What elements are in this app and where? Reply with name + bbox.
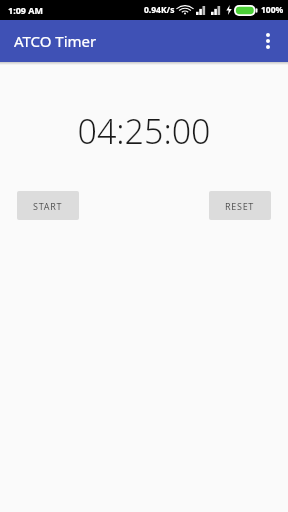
button[interactable]: RESET [209,191,271,220]
button[interactable]: More options [248,21,288,61]
button[interactable]: START [17,191,79,220]
staticText: 04:25:00 [0,108,288,154]
staticText: RESET [225,200,255,212]
staticText: ATCO Timer [14,31,97,51]
staticText: 100% [261,4,284,16]
staticText: 0.94K/s [144,4,175,16]
staticText: 1:09 AM [8,4,44,16]
staticText: START [33,200,63,212]
